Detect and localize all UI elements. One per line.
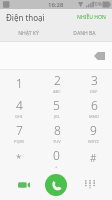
staticText: WXYZ (88, 139, 99, 144)
button[interactable]: 4 (0, 95, 38, 120)
button[interactable]: Call (45, 174, 67, 196)
staticText: * (16, 151, 22, 165)
staticText: DEF (90, 89, 98, 94)
button[interactable]: 6 (75, 95, 112, 120)
staticText: Điện thoại (6, 12, 45, 23)
button[interactable]: NHIỀU HƠN (71, 10, 112, 25)
button[interactable]: Backspace (92, 49, 106, 63)
button[interactable]: 9 (75, 120, 112, 145)
staticText: MNO (89, 114, 99, 119)
button[interactable]: 2 (38, 70, 75, 95)
staticText: 7 (16, 122, 23, 138)
staticText: 1 (16, 75, 23, 91)
staticText: DANH BẠ (73, 30, 96, 37)
staticText: 5 (53, 97, 60, 113)
staticText: PQRS (14, 139, 25, 144)
staticText: + (55, 164, 58, 169)
staticText: 2 (54, 72, 61, 88)
staticText: JKL (54, 114, 60, 119)
staticText: GHI (15, 114, 23, 119)
staticText: NHIỀU HƠN (77, 14, 106, 21)
staticText: 3 (91, 72, 98, 88)
staticText: 70% (92, 1, 102, 8)
button[interactable]: 8 (38, 120, 75, 145)
button[interactable]: 3 (75, 70, 112, 95)
button[interactable]: 0 (38, 145, 75, 170)
button[interactable]: # (75, 145, 112, 170)
button[interactable]: NHẬT KÝ (0, 26, 56, 41)
button[interactable]: Video call (16, 177, 32, 193)
staticText: 8 (54, 122, 61, 138)
button[interactable]: Keypad (82, 177, 98, 193)
staticText: 16:28 (48, 1, 64, 9)
staticText: 4 (16, 97, 23, 113)
staticText: ABC (53, 89, 61, 94)
staticText: 0 (53, 147, 60, 163)
staticText: NHẬT KÝ (18, 30, 39, 37)
staticText: # (90, 151, 97, 165)
button[interactable]: 1 (0, 70, 38, 95)
staticText: 6 (91, 97, 98, 113)
button[interactable]: * (0, 145, 38, 170)
staticText: TUV (53, 139, 61, 144)
button[interactable]: 7 (0, 120, 38, 145)
staticText: 9 (90, 122, 97, 138)
button[interactable]: DANH BẠ (56, 26, 112, 41)
button[interactable]: 5 (38, 95, 75, 120)
